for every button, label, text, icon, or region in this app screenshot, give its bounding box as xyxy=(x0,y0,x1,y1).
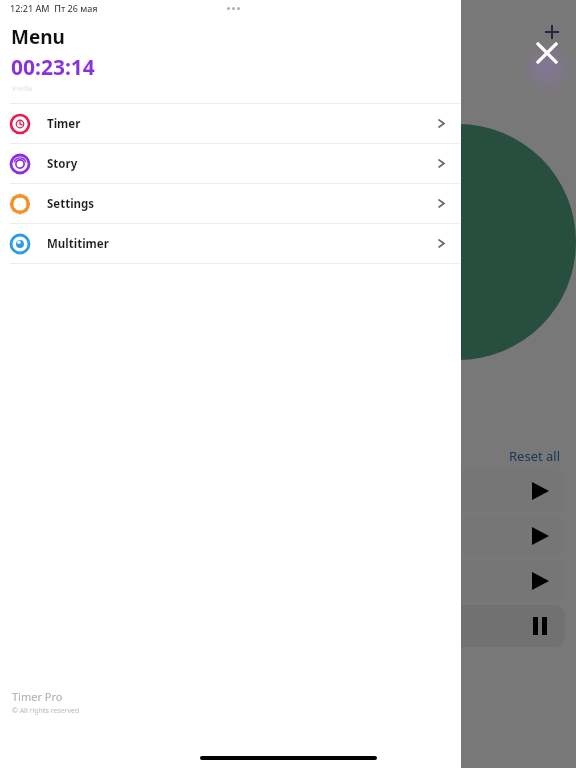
button[interactable]: Add timer xyxy=(536,16,568,48)
staticText: Timer Pro xyxy=(12,689,63,704)
button[interactable]: Play xyxy=(310,515,565,557)
button[interactable]: Play xyxy=(527,523,553,549)
button[interactable]: Story xyxy=(0,144,461,183)
button[interactable]: Multitimer xyxy=(0,224,461,263)
button[interactable]: Pause xyxy=(527,613,553,639)
staticText: Reset all xyxy=(509,447,561,465)
button[interactable]: Play xyxy=(310,560,565,602)
button[interactable]: Play xyxy=(527,568,553,594)
staticText: Menu xyxy=(11,24,65,50)
button[interactable]: Reset all xyxy=(505,443,565,469)
button[interactable]: Play xyxy=(310,470,565,512)
staticText: 12:21 AM Пт 26 мая xyxy=(10,2,98,14)
staticText: Story xyxy=(47,156,78,172)
staticText: Multitimer xyxy=(47,236,109,252)
button[interactable]: Settings xyxy=(0,184,461,223)
button[interactable]: Close xyxy=(531,37,563,69)
staticText: Timer xyxy=(47,116,81,132)
button[interactable]: Timer xyxy=(0,104,461,143)
button[interactable]: Play xyxy=(527,478,553,504)
staticText: Settings xyxy=(47,196,95,212)
staticText: 00:23:14 xyxy=(11,53,95,82)
button[interactable]: Pause xyxy=(310,605,565,647)
staticText: © All rights reserved xyxy=(12,706,80,716)
staticText: Учеба xyxy=(12,84,33,94)
